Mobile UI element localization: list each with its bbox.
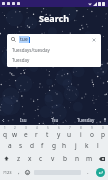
button[interactable]: 2	[10, 126, 20, 139]
other: Search	[11, 37, 16, 42]
button[interactable]: Clear	[90, 36, 97, 43]
staticText: 3	[25, 126, 27, 130]
button[interactable]: s	[15, 139, 26, 152]
staticText: u	[67, 130, 72, 139]
staticText: Tuesday	[77, 117, 95, 123]
staticText: 7	[69, 126, 71, 130]
staticText: f	[41, 141, 44, 150]
button[interactable]: ?123	[0, 165, 14, 179]
staticText: 5	[47, 126, 49, 130]
staticText: Isu	[20, 117, 27, 123]
button[interactable]: 3	[20, 126, 31, 139]
button[interactable]: h	[59, 139, 70, 152]
staticText: n	[75, 154, 80, 163]
button[interactable]: Tsu	[39, 115, 70, 125]
button[interactable]: 9	[86, 126, 97, 139]
staticText: Tuesday	[12, 57, 30, 63]
staticText: tue	[20, 36, 28, 43]
button[interactable]: a	[5, 139, 15, 152]
staticText: j	[75, 141, 77, 150]
button[interactable]: g	[48, 139, 59, 152]
staticText: g	[52, 141, 56, 150]
staticText: Tuesdays/tuesday	[12, 47, 50, 53]
button[interactable]: z	[13, 152, 24, 165]
button[interactable]: 7	[64, 126, 75, 139]
staticText: s	[19, 141, 23, 150]
staticText: 1	[4, 126, 6, 130]
staticText: Tsu	[51, 117, 59, 123]
staticText: 6	[58, 126, 60, 130]
button[interactable]: v	[47, 152, 59, 165]
button[interactable]: 8	[75, 126, 86, 139]
button[interactable]: ,	[14, 165, 23, 179]
staticText: a	[8, 141, 12, 150]
staticText: ,	[18, 168, 20, 176]
button[interactable]: k	[81, 139, 92, 152]
button[interactable]: x	[24, 152, 35, 165]
button[interactable]: m	[83, 152, 95, 165]
staticText: 4	[36, 126, 38, 130]
button[interactable]: Search	[7, 34, 101, 45]
staticText: d	[30, 141, 34, 150]
staticText: y	[57, 130, 61, 139]
staticText: r	[35, 130, 38, 139]
other: More	[2, 119, 5, 122]
staticText: k	[85, 141, 89, 150]
button[interactable]: Shift	[0, 152, 13, 165]
staticText: .	[87, 168, 89, 176]
staticText: v	[51, 154, 55, 163]
staticText: ?123	[3, 170, 12, 175]
button[interactable]: f	[37, 139, 48, 152]
staticText: 0	[102, 126, 104, 130]
staticText: b	[63, 154, 67, 163]
button[interactable]: b	[59, 152, 71, 165]
staticText: p	[101, 130, 105, 139]
button[interactable]: 0	[97, 126, 108, 139]
button[interactable]: Enter	[92, 165, 108, 179]
button[interactable]: 5	[42, 126, 53, 139]
button[interactable]: Backspace	[95, 152, 108, 165]
button[interactable]: Tuesday	[70, 115, 101, 125]
button[interactable]: Isu	[7, 115, 39, 125]
button[interactable]: 1	[0, 126, 10, 139]
button[interactable]: d	[26, 139, 37, 152]
button[interactable]: 6	[53, 126, 64, 139]
button[interactable]: Emoji	[23, 165, 32, 179]
staticText: t	[46, 130, 49, 139]
staticText: z	[17, 154, 21, 163]
staticText: Search	[0, 12, 108, 24]
staticText: w	[12, 130, 18, 139]
staticText: l	[97, 141, 99, 150]
button[interactable]: n	[71, 152, 83, 165]
staticText: q	[3, 130, 7, 139]
button[interactable]: Tuesday	[7, 55, 101, 65]
staticText: m	[86, 154, 93, 163]
staticText: h	[62, 141, 67, 150]
button[interactable]: Tuesdays/tuesday	[7, 45, 101, 55]
staticText: x	[28, 154, 32, 163]
staticText: i	[80, 130, 82, 139]
button[interactable]: j	[70, 139, 81, 152]
staticText: 8	[80, 126, 82, 130]
staticText: e	[24, 130, 28, 139]
button[interactable]: l	[92, 139, 103, 152]
button[interactable]: Microphone	[101, 115, 108, 125]
button[interactable]: c	[35, 152, 47, 165]
staticText: c	[39, 154, 43, 163]
staticText: 2	[14, 126, 16, 130]
button[interactable]: 4	[31, 126, 42, 139]
button[interactable]: .	[83, 165, 92, 179]
staticText: o	[90, 130, 94, 139]
staticText: 9	[91, 126, 93, 130]
